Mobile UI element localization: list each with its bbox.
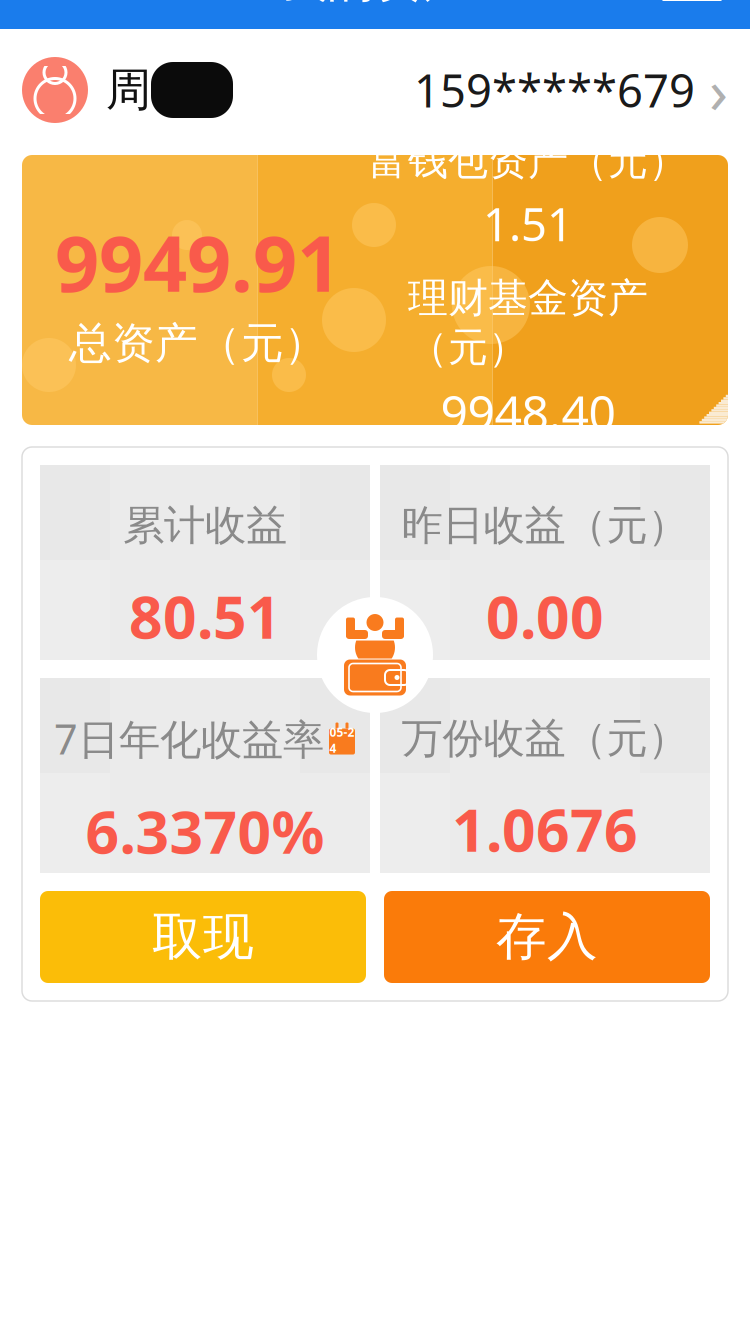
staticText: › xyxy=(709,49,728,131)
staticText: 周 xyxy=(106,62,151,118)
button[interactable]: 菜单 xyxy=(648,0,736,15)
staticText: 6.3370% xyxy=(85,792,324,870)
staticText: 取现 xyxy=(152,906,254,968)
staticText: 总资产（元） xyxy=(69,317,327,369)
staticText: 9949.91 xyxy=(55,210,341,313)
staticText: 理财基金资产（元） xyxy=(408,274,648,372)
button[interactable]: 周 xyxy=(0,29,750,151)
button[interactable]: 存入 xyxy=(384,891,710,983)
staticText: 9948.40 xyxy=(440,380,615,444)
staticText: 富钱包资产（元） xyxy=(368,136,688,185)
staticText: 1.0676 xyxy=(452,790,638,868)
staticText: 累计收益 xyxy=(123,500,287,551)
staticText: 存入 xyxy=(496,906,598,968)
staticText: 0.00 xyxy=(486,577,604,655)
staticText: 昨日收益（元） xyxy=(401,500,688,551)
staticText: 万份收益（元） xyxy=(401,713,688,764)
staticText: 1.51 xyxy=(483,193,573,254)
staticText: 80.51 xyxy=(129,577,281,655)
staticText: 159*****679 xyxy=(414,60,695,120)
staticText: 我的资产 xyxy=(279,0,471,9)
staticText: 7日年化收益率 xyxy=(54,711,324,766)
staticText: 05-24 xyxy=(329,724,354,756)
button[interactable]: 取现 xyxy=(40,891,366,983)
